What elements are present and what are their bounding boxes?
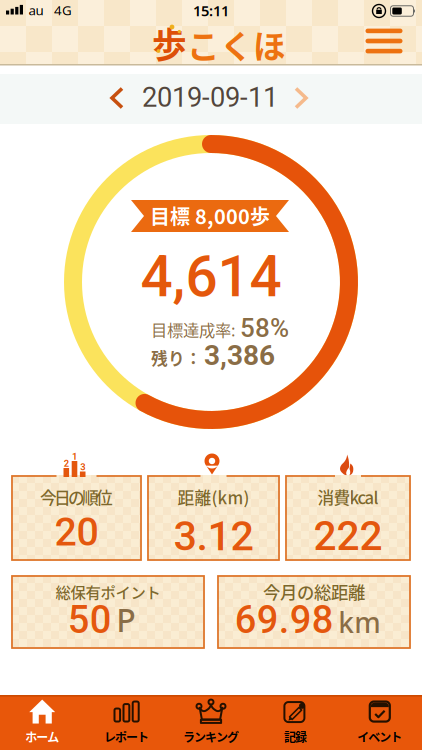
- button[interactable]: ホーム: [0, 695, 84, 750]
- button[interactable]: Previous day: [110, 87, 124, 108]
- staticText: 消費kcal: [317, 485, 378, 509]
- staticText: こくほ: [187, 21, 286, 68]
- button[interactable]: 距離(km): [147, 475, 280, 561]
- staticText: 3: [80, 461, 85, 472]
- staticText: 総保有ポイント: [55, 580, 160, 603]
- staticText: ホーム: [25, 728, 59, 745]
- button[interactable]: Next day: [294, 87, 308, 108]
- staticText: ランキング: [183, 728, 239, 745]
- staticText: 2019-09-11: [142, 81, 278, 113]
- staticText: レポート: [104, 728, 149, 745]
- staticText: イベント: [357, 728, 402, 745]
- staticText: 目標 8,000歩: [150, 201, 270, 230]
- button[interactable]: レポート: [84, 695, 169, 750]
- staticText: 今日の順位: [40, 485, 113, 509]
- staticText: 2: [64, 458, 69, 469]
- button[interactable]: Menu: [362, 23, 406, 59]
- staticText: 222: [313, 512, 382, 560]
- staticText: 3,386: [204, 339, 275, 372]
- button[interactable]: 記録: [253, 695, 338, 750]
- button[interactable]: ランキング: [169, 695, 253, 750]
- button[interactable]: イベント: [338, 695, 422, 750]
- staticText: 距離(km): [177, 485, 249, 509]
- staticText: km: [338, 604, 381, 641]
- staticText: 残り：: [151, 346, 202, 370]
- staticText: 58%: [240, 313, 289, 343]
- staticText: 4G: [54, 1, 72, 19]
- staticText: 今月の総距離: [263, 579, 365, 604]
- staticText: 4,614: [140, 244, 281, 310]
- staticText: 20: [54, 509, 98, 555]
- button[interactable]: 総保有ポイント: [11, 575, 205, 649]
- staticText: P: [116, 598, 136, 641]
- staticText: 歩: [152, 18, 187, 68]
- staticText: 50: [68, 598, 112, 642]
- staticText: 3.12: [173, 512, 253, 560]
- staticText: au: [28, 1, 43, 19]
- button[interactable]: 今月の総距離: [217, 575, 411, 649]
- staticText: 69.98: [235, 598, 334, 642]
- staticText: 15:11: [193, 1, 229, 20]
- staticText: 目標達成率:: [151, 318, 236, 341]
- staticText: 記録: [284, 728, 307, 745]
- button[interactable]: 消費kcal: [285, 475, 411, 561]
- staticText: 1: [72, 451, 77, 462]
- button[interactable]: 今日の順位: [11, 475, 142, 561]
